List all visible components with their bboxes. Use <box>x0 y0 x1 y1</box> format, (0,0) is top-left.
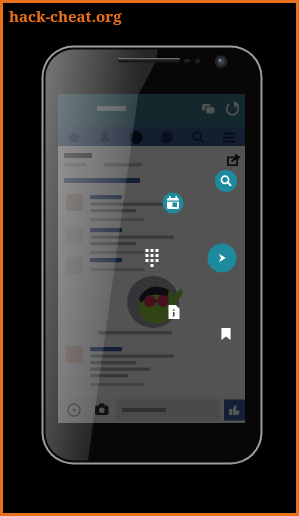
staticText: hack-cheat.org <box>9 6 122 26</box>
